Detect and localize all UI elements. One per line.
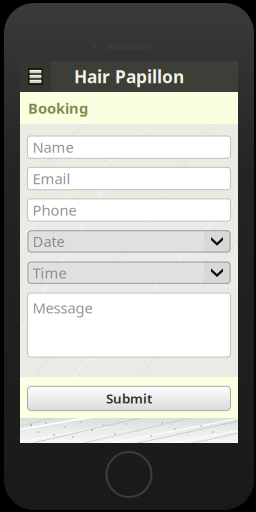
staticText: Name [32,137,73,157]
button[interactable]: Email [27,167,230,190]
staticText: Time [32,263,66,282]
staticText: Date [32,232,64,251]
staticText: Message [32,298,92,317]
staticText: Booking [28,98,88,118]
button[interactable]: Time [27,262,230,284]
staticText: Submit [106,390,152,407]
button[interactable]: Submit [27,386,230,411]
staticText: Email [32,169,70,188]
button[interactable]: Date [27,230,230,252]
button[interactable]: Menu [20,61,51,92]
button[interactable]: Name [27,136,230,158]
button[interactable]: Message [27,293,230,357]
button[interactable]: Phone [27,199,230,221]
staticText: Hair Papillon [74,65,184,88]
staticText: Phone [32,200,76,220]
